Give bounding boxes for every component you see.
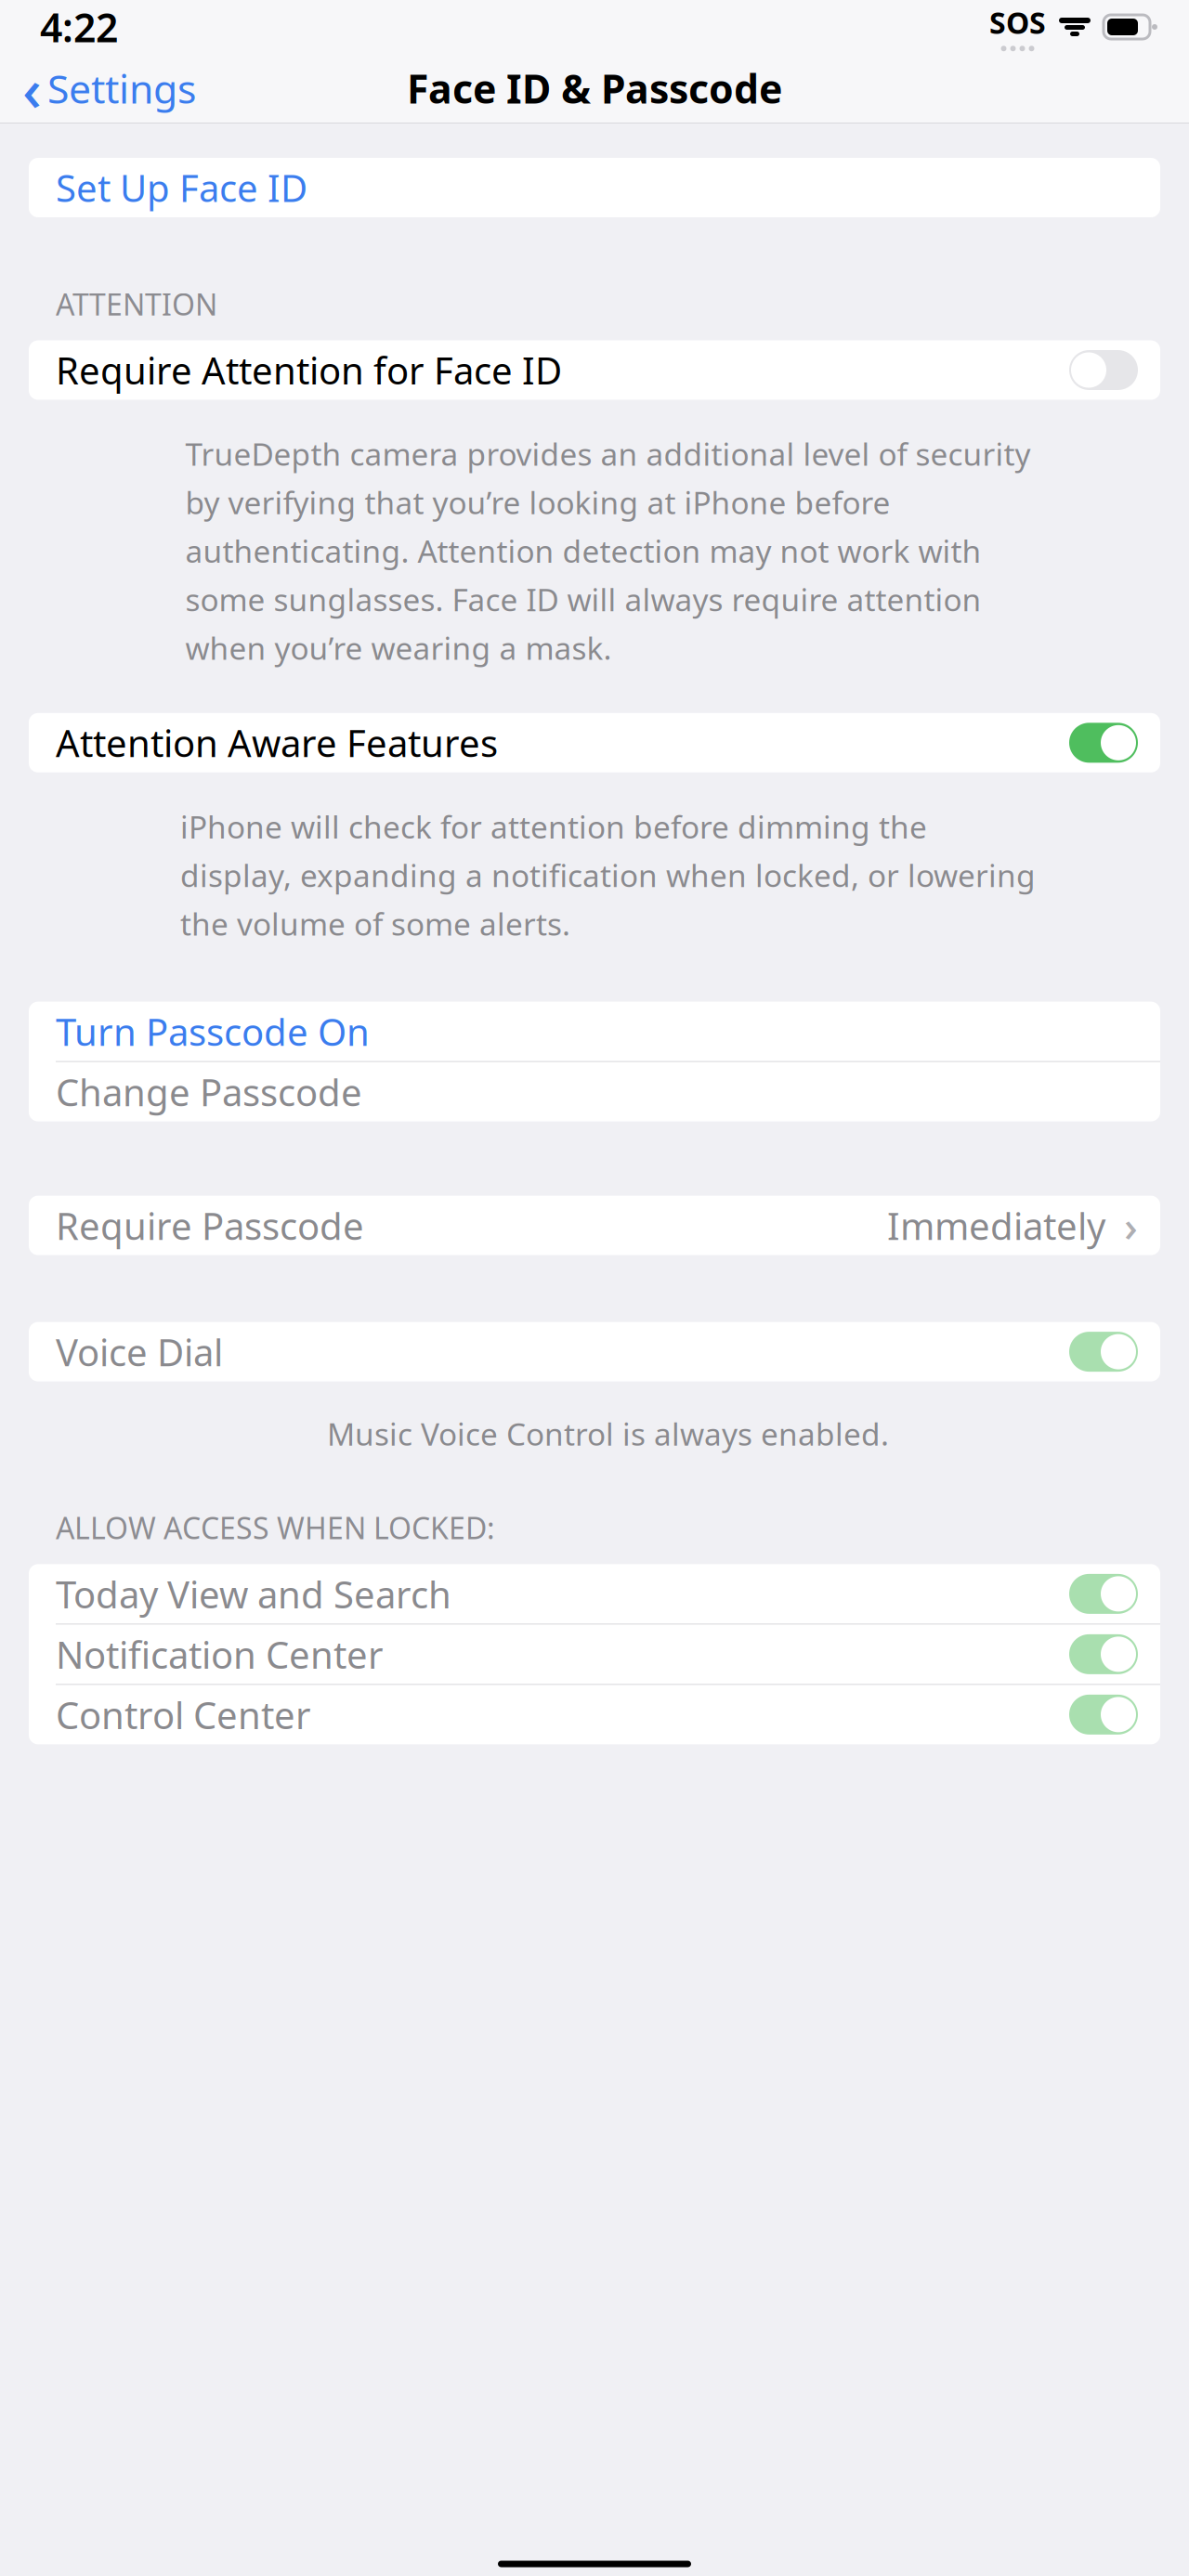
staticText: Face ID & Passcode <box>407 62 782 115</box>
staticText: Attention Aware Features <box>56 718 498 767</box>
staticText: Change Passcode <box>56 1067 362 1116</box>
staticText: Set Up Face ID <box>56 163 307 212</box>
staticText: Music Voice Control is always enabled. <box>327 1413 889 1454</box>
staticText: ‹ <box>22 49 42 128</box>
button[interactable]: Attention Aware Features <box>29 713 1160 772</box>
button[interactable]: Turn Passcode On <box>29 1002 1160 1061</box>
staticText: Require Attention for Face ID <box>56 345 562 395</box>
staticText: some sunglasses. Face ID will always req… <box>185 579 981 620</box>
button[interactable]: ‹ <box>0 41 196 135</box>
button[interactable]: Control Center <box>29 1685 1160 1744</box>
staticText: › <box>1113 1197 1138 1253</box>
staticText: Voice Dial <box>56 1327 223 1376</box>
staticText: 4:22 <box>40 1 118 53</box>
staticText: ATTENTION <box>56 284 217 324</box>
staticText: iPhone will check for attention before d… <box>180 806 927 847</box>
button[interactable]: Require Passcode <box>29 1196 1160 1255</box>
staticText: TrueDepth camera provides an additional … <box>185 433 1031 474</box>
button[interactable]: Notification Center <box>29 1625 1160 1684</box>
staticText: ALLOW ACCESS WHEN LOCKED: <box>56 1508 495 1547</box>
button[interactable]: Require Attention for Face ID <box>29 340 1160 400</box>
staticText: display, expanding a notification when l… <box>180 854 1036 896</box>
staticText: Notification Center <box>56 1630 384 1679</box>
staticText: when you’re wearing a mask. <box>185 627 612 669</box>
staticText: the volume of some alerts. <box>180 903 570 944</box>
staticText: Today View and Search <box>56 1569 451 1618</box>
staticText: Turn Passcode On <box>56 1007 370 1056</box>
staticText: Require Passcode <box>56 1201 364 1250</box>
staticText: Immediately <box>887 1201 1105 1250</box>
staticText: Control Center <box>56 1690 311 1739</box>
staticText: Settings <box>47 62 196 115</box>
button[interactable]: Voice Dial <box>29 1322 1160 1381</box>
staticText: SOS <box>989 3 1046 42</box>
staticText: authenticating. Attention detection may … <box>185 530 981 571</box>
button[interactable]: Today View and Search <box>29 1564 1160 1624</box>
staticText: by verifying that you’re looking at iPho… <box>185 482 890 523</box>
button[interactable]: Set Up Face ID <box>29 158 1160 217</box>
button[interactable]: Change Passcode <box>29 1062 1160 1121</box>
